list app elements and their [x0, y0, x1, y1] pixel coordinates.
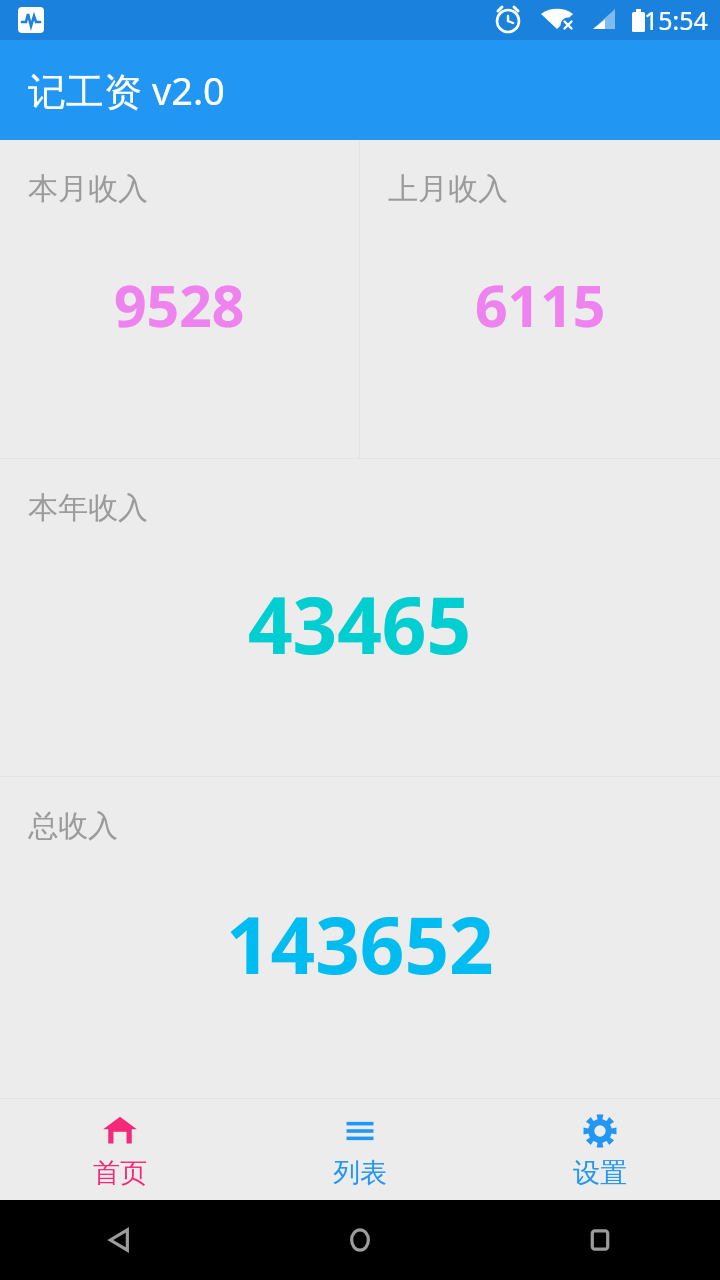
- staticText: 设置: [573, 1156, 627, 1190]
- button[interactable]: 列表: [240, 1099, 480, 1200]
- button[interactable]: 总收入: [0, 777, 720, 1098]
- staticText: 43465: [248, 571, 472, 677]
- staticText: 总收入: [28, 807, 118, 845]
- button[interactable]: 本月收入: [0, 140, 359, 458]
- button[interactable]: 首页: [0, 1099, 240, 1200]
- button[interactable]: Recent apps: [480, 1200, 720, 1280]
- staticText: 9528: [114, 266, 245, 344]
- button[interactable]: Home: [240, 1200, 480, 1280]
- staticText: 首页: [93, 1156, 147, 1190]
- button[interactable]: 上月收入: [360, 140, 720, 458]
- staticText: 本月收入: [28, 170, 148, 208]
- button[interactable]: Back: [0, 1200, 240, 1280]
- staticText: 记工资 v2.0: [28, 64, 225, 116]
- staticText: 列表: [333, 1156, 387, 1190]
- staticText: 15:54: [644, 3, 708, 37]
- button[interactable]: 设置: [480, 1099, 720, 1200]
- staticText: 143652: [226, 891, 494, 997]
- staticText: 本年收入: [28, 489, 148, 527]
- staticText: 上月收入: [388, 170, 508, 208]
- button[interactable]: 本年收入: [0, 459, 720, 776]
- staticText: 6115: [475, 266, 606, 344]
